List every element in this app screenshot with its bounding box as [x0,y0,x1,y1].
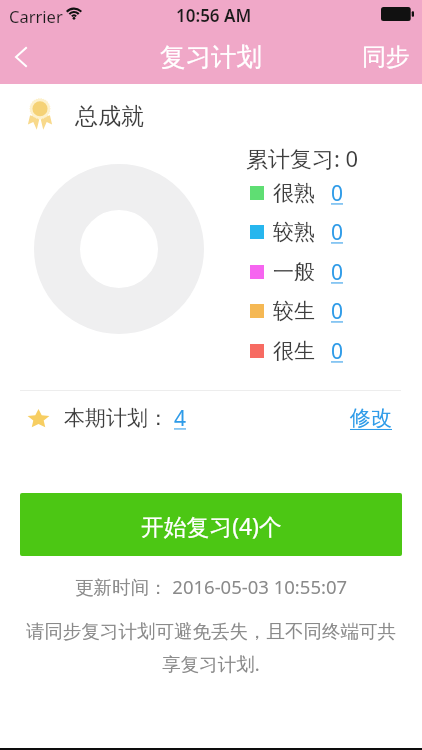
staticText: 更新时间： 2016-05-03 10:55:07 [75,574,348,599]
staticText: Carrier [9,5,63,27]
button[interactable]: 一般 [250,258,344,286]
staticText: 很熟 [273,180,315,206]
button[interactable]: Back [0,30,44,84]
button[interactable]: 很生 [250,337,344,365]
staticText: 较生 [273,298,315,324]
staticText: 开始复习(4)个 [141,511,282,542]
staticText: 0 [331,337,344,365]
staticText: 10:56 AM [176,4,252,27]
staticText: 总成就 [75,102,144,131]
staticText: 较熟 [273,219,315,245]
staticText: 4 [174,404,187,433]
staticText: 很生 [273,338,315,364]
button[interactable]: 较熟 [250,218,344,246]
staticText: 修改 [350,405,392,431]
button[interactable]: 很熟 [250,179,344,207]
staticText: 0 [331,258,344,286]
staticText: 同步 [362,42,410,72]
button[interactable]: 较生 [250,297,344,325]
staticText: 累计复习: 0 [246,143,359,173]
staticText: 请同步复习计划可避免丢失，且不同终端可共享复习计划. [20,620,402,677]
staticText: 0 [331,179,344,207]
staticText: 0 [331,218,344,246]
staticText: 本期计划： [64,405,169,431]
button[interactable]: 开始复习(4)个 [20,493,402,556]
button[interactable]: 本期计划： [27,395,392,441]
staticText: 0 [331,297,344,325]
staticText: 一般 [273,259,315,285]
button[interactable]: 同步 [362,30,410,84]
staticText: 复习计划 [160,41,262,73]
